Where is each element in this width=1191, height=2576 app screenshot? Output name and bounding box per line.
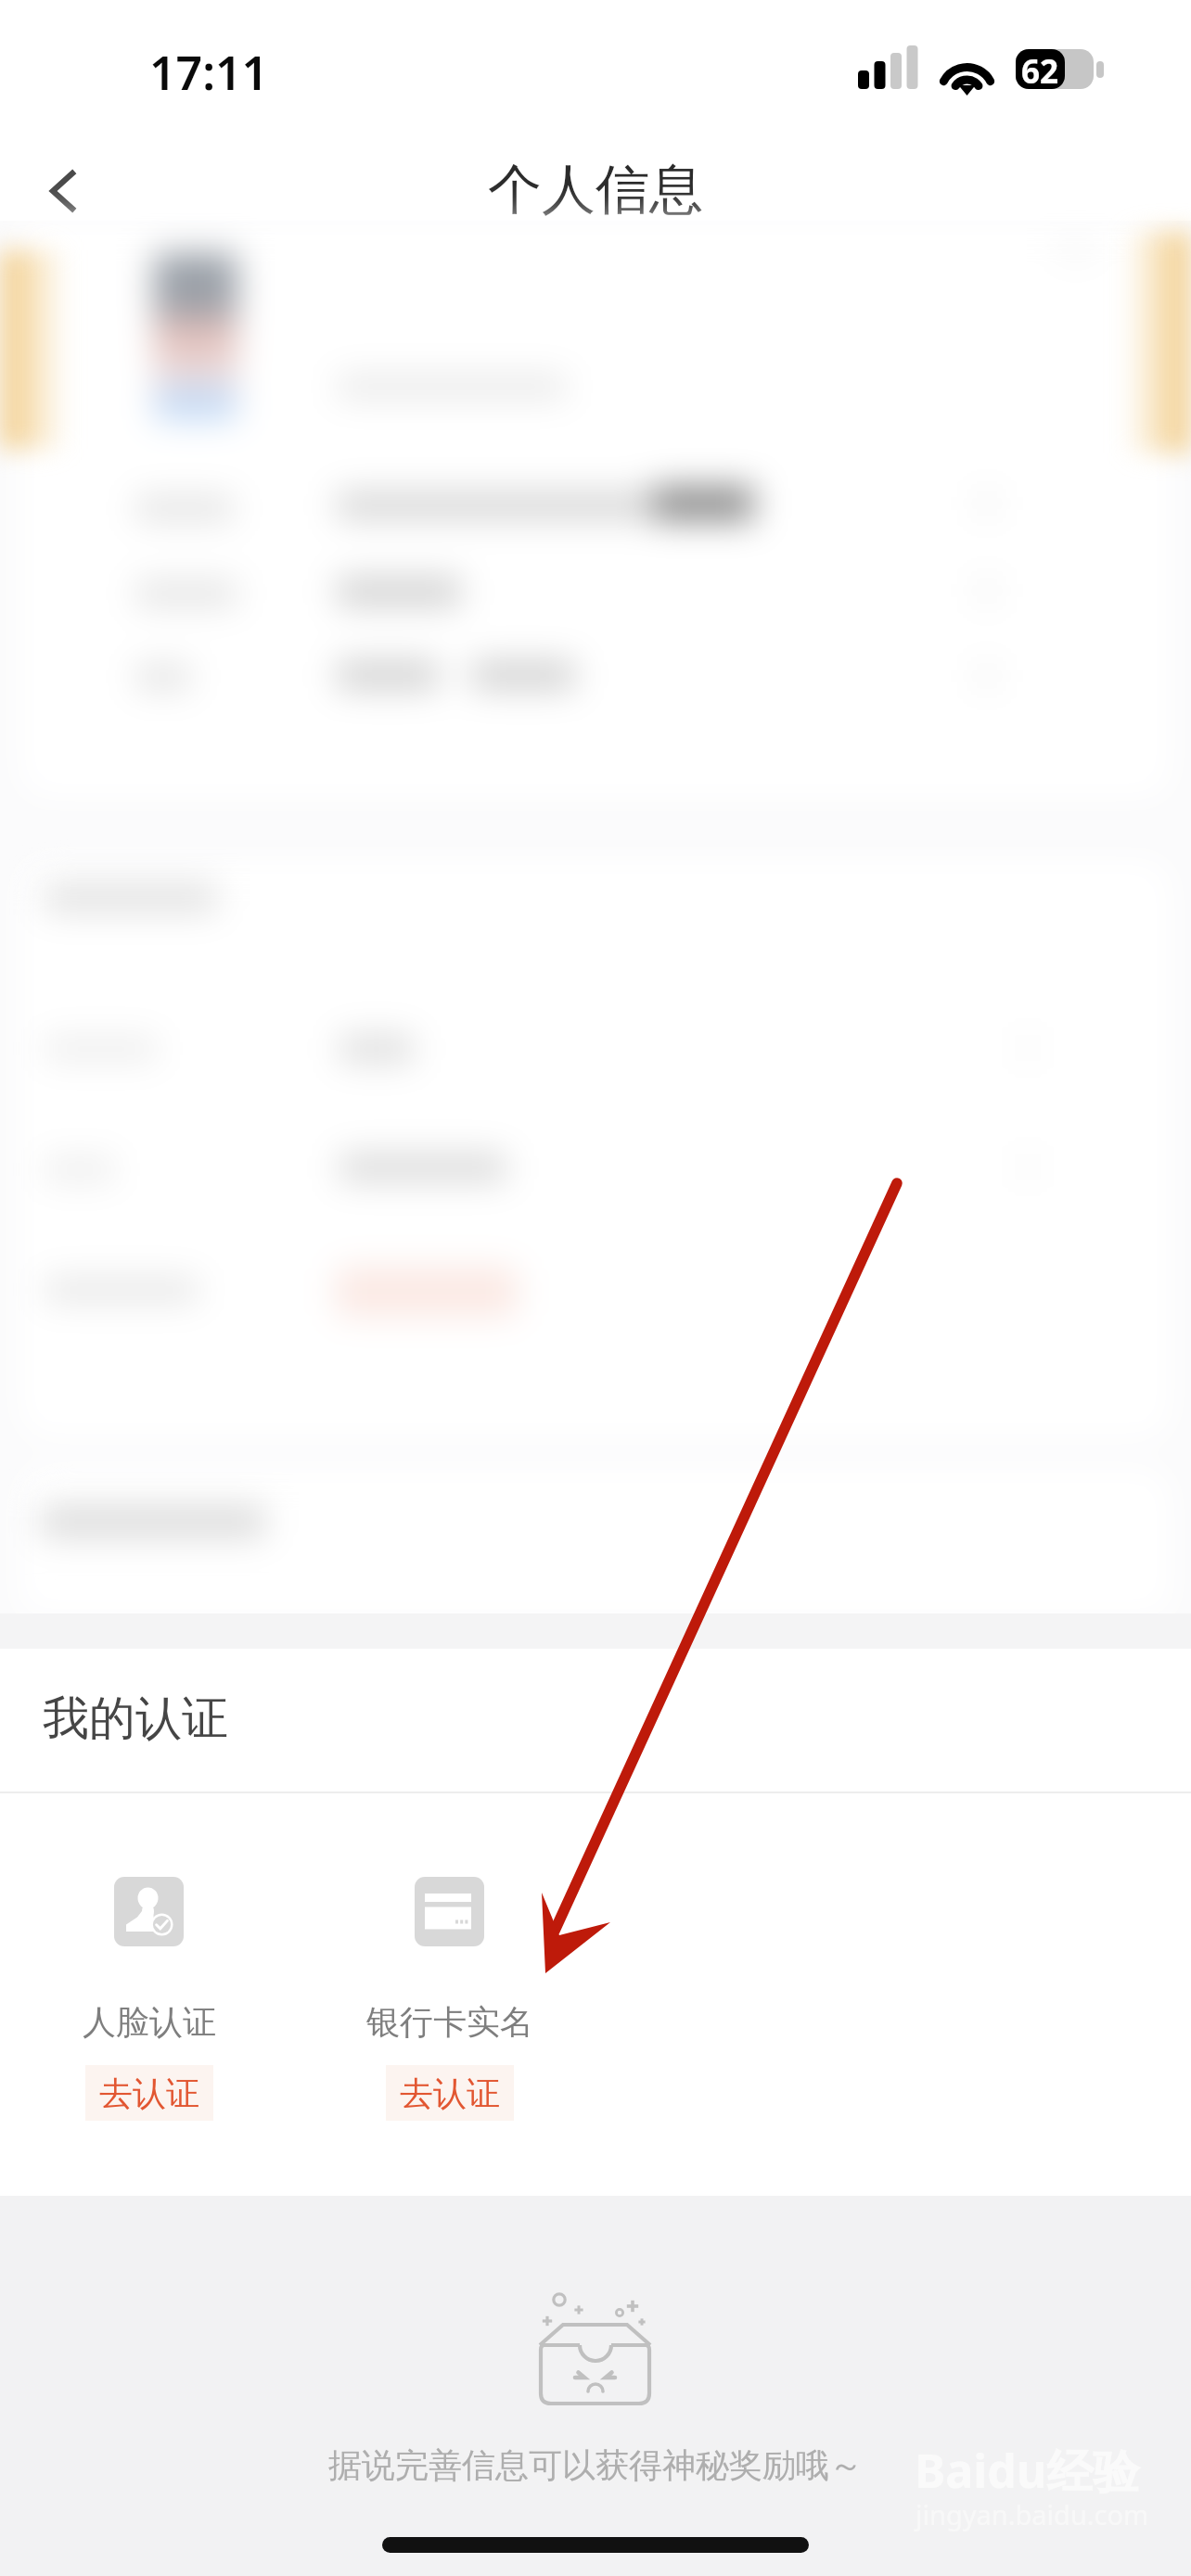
staticText: 银行卡实名 [366,2001,533,2043]
staticText: 人脸认证 [83,2001,216,2043]
staticText: 62 [1021,49,1059,94]
button[interactable]: 去认证 [386,2065,514,2121]
button[interactable]: Back [21,148,105,232]
button[interactable]: 银行卡实名 [301,1793,601,2121]
staticText: 据说完善信息可以获得神秘奖励哦～ [0,2444,1191,2486]
staticText: 个人信息 [488,156,703,223]
staticText: 我的认证 [43,1690,228,1748]
staticText: 去认证 [99,2072,199,2114]
button[interactable]: 人脸认证 [0,1793,301,2121]
staticText: 去认证 [400,2072,500,2114]
staticText: Baidu经验 [915,2439,1140,2502]
button[interactable]: 去认证 [85,2065,213,2121]
staticText: 17:11 [149,41,269,104]
